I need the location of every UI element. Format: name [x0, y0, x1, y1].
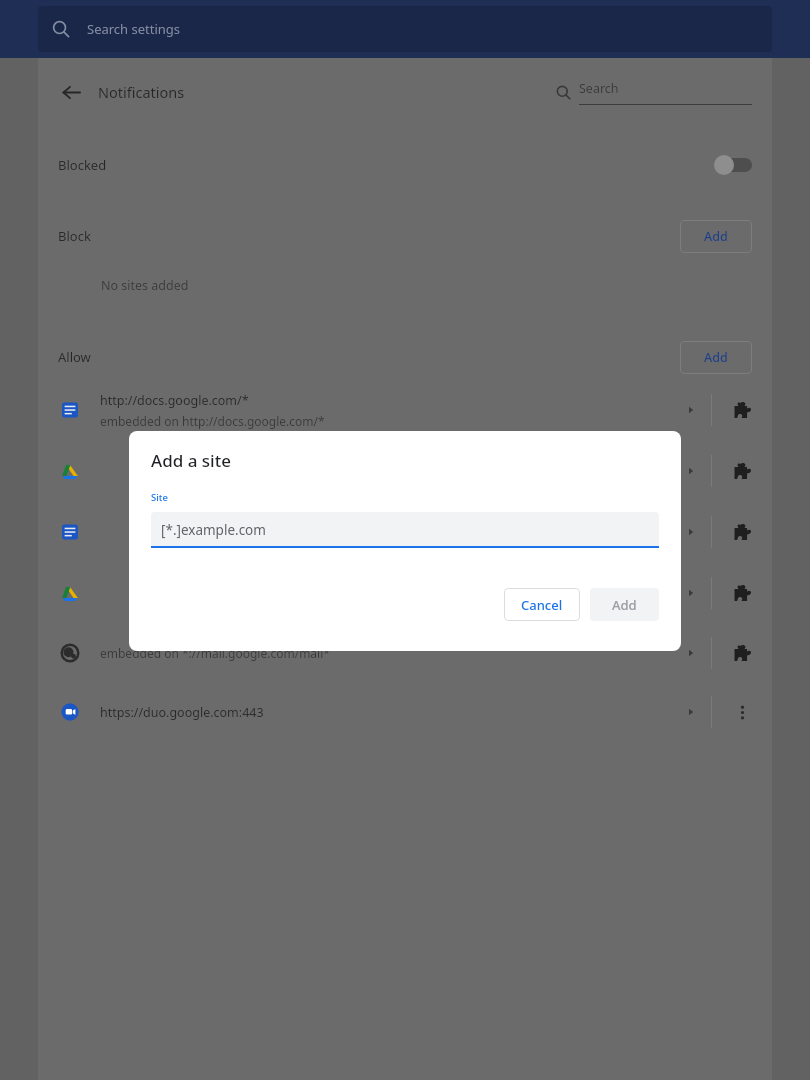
button[interactable]: Back [56, 77, 86, 107]
button[interactable]: Search [556, 74, 752, 110]
button[interactable]: Extension [712, 571, 772, 615]
button[interactable]: Extension [58, 506, 772, 558]
staticText: Search settings [87, 20, 181, 38]
staticText: Add [704, 349, 728, 366]
staticText: Site [151, 491, 168, 504]
button[interactable]: More options [712, 690, 772, 734]
staticText: Cancel [521, 596, 563, 614]
button[interactable]: Add [680, 220, 752, 253]
button[interactable]: Extension [58, 445, 772, 497]
staticText: embedded on *://mail.google.com/mail* [100, 645, 330, 661]
button[interactable]: https://duo.google.com:443 [58, 686, 772, 738]
staticText: Blocked [58, 156, 107, 174]
staticText: Search [579, 80, 619, 97]
button[interactable]: Add [590, 588, 659, 621]
button[interactable]: Blocked [58, 146, 752, 184]
staticText: Block [58, 227, 91, 245]
button[interactable]: Extension [712, 449, 772, 493]
staticText: [*.]example.com [161, 521, 266, 539]
staticText: Notifications [98, 82, 185, 102]
button[interactable]: Extension [712, 388, 772, 432]
button[interactable]: Extension [712, 631, 772, 675]
staticText: embedded on http://docs.google.com/* [100, 413, 325, 429]
staticText: http://docs.google.com/* [100, 392, 249, 409]
button[interactable]: Extension [712, 510, 772, 554]
button[interactable]: embedded on *://mail.google.com/mail* [58, 627, 772, 679]
staticText: No sites added [101, 277, 189, 294]
button[interactable]: http://docs.google.com/* [58, 384, 772, 436]
button[interactable]: Add [680, 341, 752, 374]
staticText: Allow [58, 348, 91, 366]
button[interactable]: [*.]example.com [151, 512, 659, 548]
staticText: https://duo.google.com:443 [100, 704, 264, 721]
button[interactable]: Extension [58, 567, 772, 619]
staticText: Add a site [151, 449, 231, 472]
staticText: Add [704, 228, 728, 245]
button[interactable]: Cancel [504, 588, 580, 621]
staticText: Add [612, 596, 637, 614]
button[interactable]: Search settings [38, 6, 772, 52]
